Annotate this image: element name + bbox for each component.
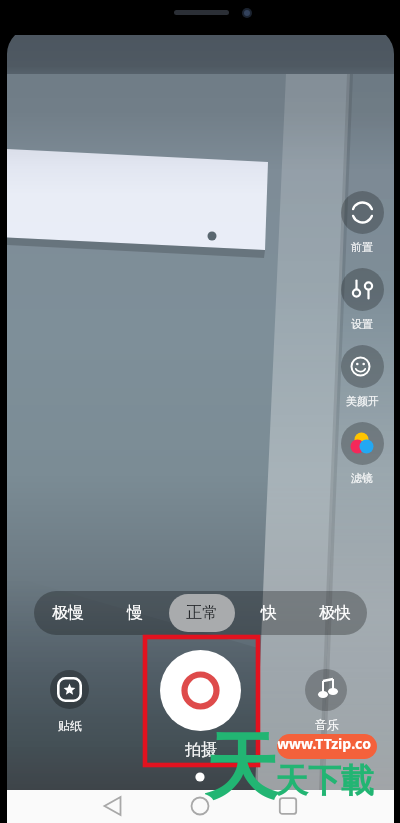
staticText: 天 (205, 722, 278, 806)
staticText: 贴纸 (58, 718, 82, 733)
staticText: 快 (261, 603, 277, 623)
button[interactable]: 正常 (168, 591, 235, 635)
staticText: 美颜开 (346, 394, 379, 408)
button[interactable]: 拍摄 (160, 650, 241, 731)
staticText: 音乐 (315, 717, 339, 732)
staticText: 极慢 (52, 603, 84, 623)
staticText: 滤镜 (351, 471, 373, 485)
button[interactable]: 极慢 (34, 591, 101, 635)
staticText: 天下載 (275, 760, 374, 800)
staticText: 拍摄 (185, 740, 217, 760)
button[interactable]: 极快 (302, 591, 367, 635)
staticText: 设置 (351, 317, 373, 331)
button[interactable]: 美颜开 (341, 345, 384, 388)
button[interactable]: 最近任务 (264, 789, 312, 822)
staticText: 前置 (351, 240, 373, 254)
button[interactable]: 返回 (89, 789, 137, 822)
staticText: 慢 (127, 603, 143, 623)
button[interactable]: 设置 (341, 268, 384, 311)
staticText: 极快 (319, 603, 351, 623)
staticText: 正常 (186, 603, 218, 623)
button[interactable]: 贴纸 (50, 670, 89, 709)
button[interactable]: 前置 (341, 191, 384, 234)
button[interactable]: 慢 (101, 591, 168, 635)
button[interactable]: 主页 (176, 789, 224, 822)
button[interactable]: 滤镜 (341, 422, 384, 465)
button[interactable]: 音乐 (305, 669, 347, 711)
button[interactable]: 快 (235, 591, 302, 635)
staticText: www.TTzip.com (277, 734, 377, 759)
